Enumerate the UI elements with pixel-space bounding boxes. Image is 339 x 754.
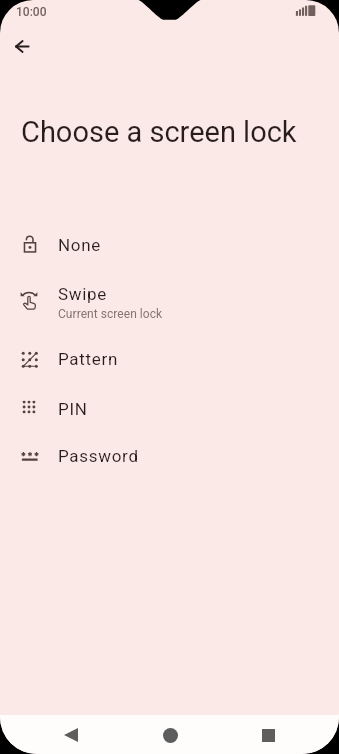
button[interactable]: Home (152, 717, 188, 753)
staticText: Choose a screen lock (21, 115, 297, 149)
staticText: Pattern (58, 349, 119, 369)
staticText: PIN (58, 399, 88, 419)
button[interactable]: Swipe (0, 270, 339, 336)
button[interactable]: Back (5, 29, 39, 63)
button[interactable]: PIN (0, 385, 339, 433)
button[interactable]: Recents (250, 717, 286, 753)
staticText: Password (58, 446, 139, 466)
button[interactable]: Password (0, 433, 339, 482)
button[interactable]: None (0, 221, 339, 270)
button[interactable]: Pattern (0, 336, 339, 385)
staticText: Swipe (58, 284, 108, 304)
staticText: None (58, 235, 102, 255)
button[interactable]: Back (53, 717, 89, 753)
staticText: 10:00 (16, 5, 47, 19)
staticText: Current screen lock (58, 307, 163, 321)
